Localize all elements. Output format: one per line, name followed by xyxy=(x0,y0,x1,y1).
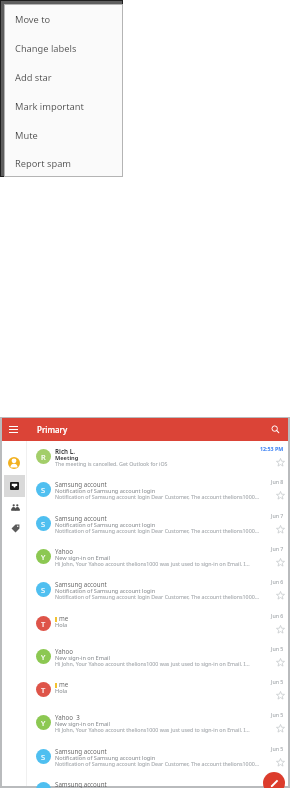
button[interactable]: Star xyxy=(274,656,287,669)
staticText: Notification of Samsung account login xyxy=(55,587,156,595)
staticText: Notification of Samsung account login De… xyxy=(55,760,259,767)
button[interactable]: Star xyxy=(274,756,287,769)
staticText: Notification of Samsung account login xyxy=(55,487,156,495)
staticText: Notification of Samsung account login De… xyxy=(55,593,259,600)
button[interactable]: Mark important xyxy=(5,92,122,121)
staticText: T xyxy=(41,685,46,695)
staticText: Notification of Samsung account login De… xyxy=(55,527,259,534)
button[interactable]: S xyxy=(27,474,288,507)
staticText: Jun 7 xyxy=(271,512,284,519)
button[interactable]: Change labels xyxy=(5,34,122,63)
staticText: Rich L. xyxy=(55,447,75,455)
staticText: me xyxy=(59,680,69,688)
button[interactable]: S xyxy=(27,741,288,774)
staticText: Notification of Samsung account login xyxy=(55,787,156,788)
staticText: Notification of Samsung account login xyxy=(55,521,156,529)
staticText: Samsung account xyxy=(55,514,107,522)
button[interactable]: Promotions xyxy=(7,520,24,537)
staticText: S xyxy=(41,485,46,495)
staticText: Move to xyxy=(15,13,51,26)
button[interactable]: Y xyxy=(27,641,288,674)
staticText: me xyxy=(59,614,69,622)
button[interactable]: Star xyxy=(274,689,287,702)
button[interactable]: R xyxy=(27,441,288,474)
staticText: S xyxy=(41,585,46,595)
staticText: Jun 5 xyxy=(271,745,284,752)
staticText: Jun 5 xyxy=(271,678,284,685)
button[interactable]: Star xyxy=(274,556,287,569)
staticText: Hola xyxy=(55,687,68,695)
staticText: Jun 5 xyxy=(271,645,284,652)
staticText: New sign-in on Email xyxy=(55,554,110,562)
staticText: The meeting is cancelled. Get Outlook fo… xyxy=(55,460,168,467)
staticText: Hi John, Your Yahoo account thelions1000… xyxy=(55,726,250,733)
button[interactable]: Inbox xyxy=(4,475,25,497)
button[interactable]: Y xyxy=(27,707,288,740)
button[interactable]: Compose xyxy=(263,772,285,788)
staticText: New sign-in on Email xyxy=(55,654,110,662)
button[interactable]: Star xyxy=(274,722,287,735)
button[interactable]: Move to xyxy=(5,5,122,34)
button[interactable]: Add star xyxy=(5,63,122,92)
button[interactable]: S xyxy=(27,774,288,788)
staticText: Hi John, Your Yahoo account thelions1000… xyxy=(55,560,250,567)
staticText: Jun 8 xyxy=(271,478,284,485)
button[interactable]: Y xyxy=(27,541,288,574)
staticText: Hola xyxy=(55,621,68,629)
staticText: New sign-in on Email xyxy=(55,720,110,728)
button[interactable]: Account xyxy=(8,457,20,469)
button[interactable]: Report spam xyxy=(5,150,122,176)
staticText: Y xyxy=(41,552,46,562)
staticText: Jun 5 xyxy=(271,778,284,785)
staticText: Samsung account xyxy=(55,580,107,588)
staticText: Add star xyxy=(15,71,52,84)
staticText: Hi John, Your Yahoo account thelions1000… xyxy=(55,660,250,667)
button[interactable]: Star xyxy=(274,523,287,536)
staticText: Y xyxy=(41,718,46,728)
staticText: S xyxy=(41,752,46,762)
staticText: Mute xyxy=(15,129,38,142)
button[interactable]: S xyxy=(27,508,288,541)
staticText: Samsung account xyxy=(55,780,107,788)
staticText: Change labels xyxy=(15,42,77,55)
button[interactable]: Star xyxy=(274,456,287,469)
staticText: Mark important xyxy=(15,100,84,113)
button[interactable]: T xyxy=(27,674,288,707)
button[interactable]: Navigation menu xyxy=(2,418,25,441)
staticText: Jun 6 xyxy=(271,578,284,585)
staticText: Report spam xyxy=(15,157,72,170)
button[interactable]: Star xyxy=(274,489,287,502)
staticText: Y xyxy=(41,652,46,662)
button[interactable]: S xyxy=(27,574,288,607)
staticText: Yahoo 3 xyxy=(55,713,80,721)
staticText: S xyxy=(41,519,46,529)
staticText: R xyxy=(41,452,46,462)
button[interactable]: Search xyxy=(262,418,288,441)
staticText: Samsung account xyxy=(55,480,107,488)
staticText: Yahoo xyxy=(55,647,73,655)
button[interactable]: Star xyxy=(274,623,287,636)
button[interactable]: T xyxy=(27,608,288,641)
staticText: Yahoo xyxy=(55,547,73,555)
button[interactable]: Star xyxy=(274,589,287,602)
staticText: Samsung account xyxy=(55,747,107,755)
staticText: Jun 7 xyxy=(271,545,284,552)
staticText: Jun 5 xyxy=(271,711,284,718)
button[interactable]: Mute xyxy=(5,121,122,150)
staticText: 12:53 PM xyxy=(260,445,284,452)
button[interactable]: Social xyxy=(7,499,24,516)
staticText: T xyxy=(41,619,46,629)
staticText: Primary xyxy=(37,424,68,435)
staticText: Meeting xyxy=(55,454,79,462)
staticText: Notification of Samsung account login De… xyxy=(55,493,259,500)
staticText: Notification of Samsung account login xyxy=(55,754,156,762)
staticText: Jun 6 xyxy=(271,612,284,619)
